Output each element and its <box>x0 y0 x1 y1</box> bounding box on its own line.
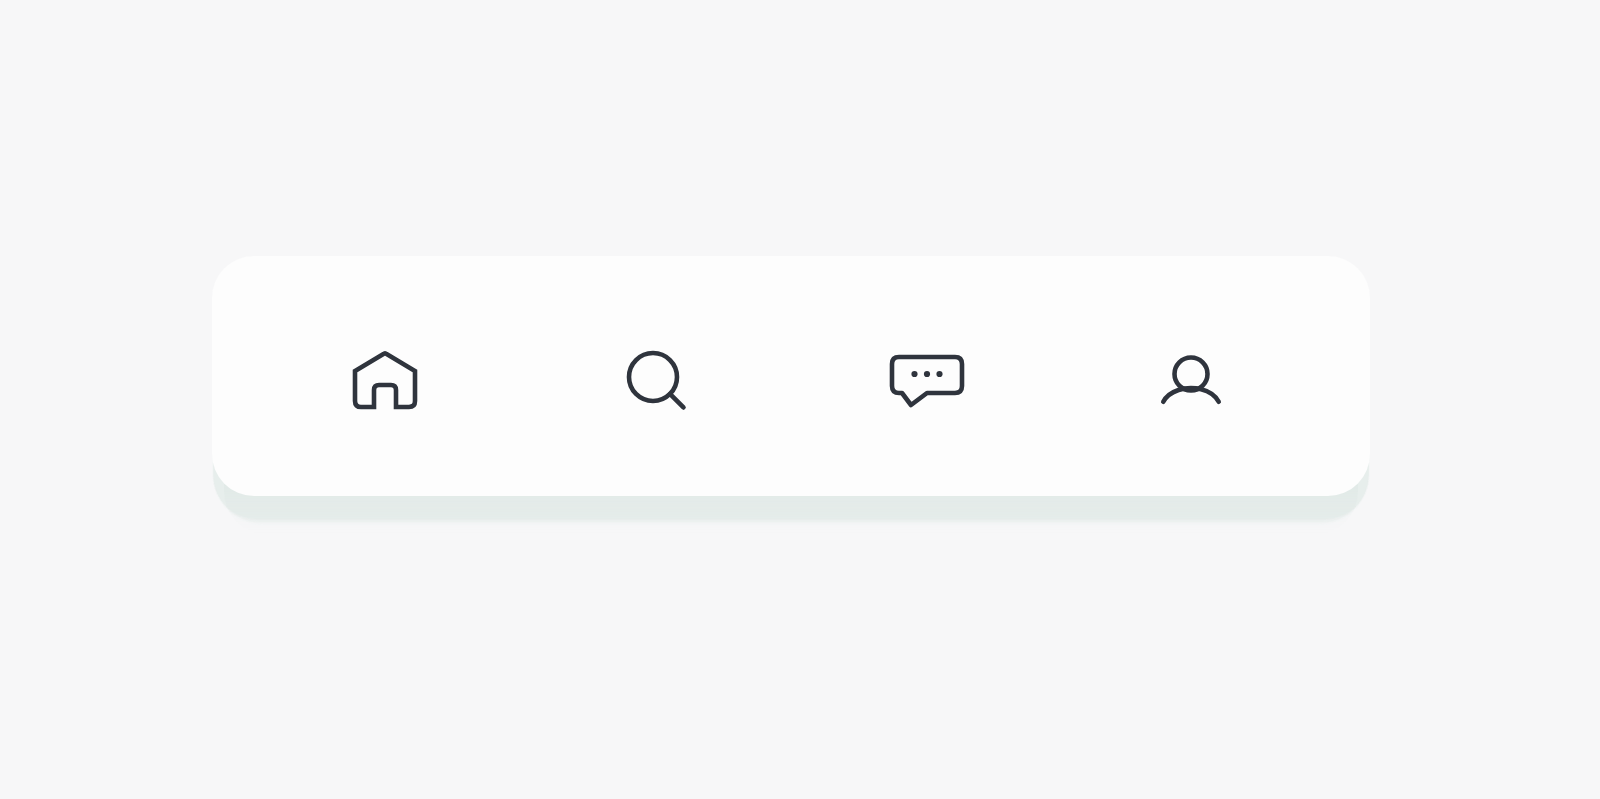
button[interactable]: Search <box>595 323 715 443</box>
button[interactable]: Home <box>325 323 445 443</box>
button[interactable]: Profile <box>1132 323 1252 443</box>
button[interactable]: Messages <box>867 323 987 443</box>
